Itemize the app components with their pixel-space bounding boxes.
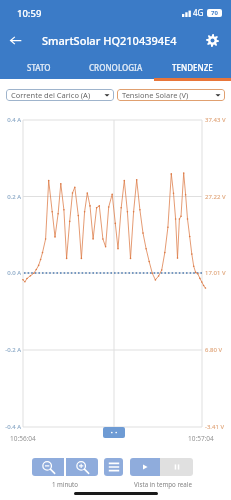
staticText: 0.0 A xyxy=(0,269,21,277)
button[interactable]: Pause xyxy=(160,458,193,476)
staticText: 37.43 V xyxy=(205,116,226,124)
staticText: STATO xyxy=(27,62,51,73)
button[interactable]: STATO xyxy=(0,56,77,80)
staticText: CRONOLOGIA xyxy=(89,62,143,73)
staticText: Tensione Solare (V) xyxy=(122,90,215,100)
staticText: TENDENZE xyxy=(172,62,213,73)
button[interactable]: Scrub xyxy=(103,427,125,438)
button[interactable]: CRONOLOGIA xyxy=(77,56,154,80)
button[interactable]: Zoom out xyxy=(32,458,64,476)
staticText: 4G xyxy=(193,7,204,18)
staticText: Corrente del Carico (A) xyxy=(11,90,104,100)
staticText: 6.80 V xyxy=(205,346,223,354)
button[interactable]: Legend xyxy=(104,458,123,476)
staticText: 10:57:04 xyxy=(188,434,214,443)
staticText: 27.22 V xyxy=(205,193,226,201)
button[interactable]: Zoom in xyxy=(66,458,98,476)
staticText: 0.4 A xyxy=(0,116,21,124)
staticText: 0.2 A xyxy=(0,193,21,201)
staticText: 70 xyxy=(211,9,218,17)
button[interactable]: Back xyxy=(0,25,30,55)
button[interactable]: Play xyxy=(130,458,160,476)
staticText: Vista in tempo reale xyxy=(128,480,198,488)
staticText: -3.41 V xyxy=(205,423,224,431)
staticText: 17.01 V xyxy=(205,269,226,277)
staticText: 1 minuto xyxy=(32,480,98,488)
button[interactable]: Settings xyxy=(197,25,227,55)
staticText: SmartSolar HQ2104394E4 xyxy=(42,33,197,48)
button[interactable]: TENDENZE xyxy=(154,56,231,80)
staticText: 10:59 xyxy=(17,7,42,20)
staticText: -0.4 A xyxy=(0,423,21,431)
button[interactable]: Tensione Solare (V) xyxy=(117,89,225,101)
staticText: -0.2 A xyxy=(0,346,21,354)
button[interactable]: Corrente del Carico (A) xyxy=(6,89,114,101)
staticText: 10:56:04 xyxy=(10,434,36,443)
